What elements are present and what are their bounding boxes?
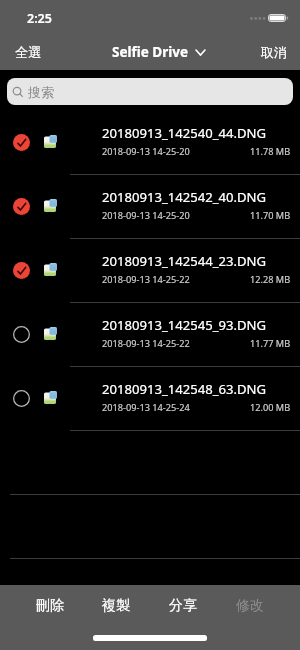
staticText: 11.77 MB (250, 337, 291, 350)
button[interactable]: 20180913_142544_23.DNG (0, 239, 300, 303)
button[interactable]: 全選 (0, 38, 53, 66)
button[interactable]: Selfie Drive (106, 38, 212, 66)
staticText: 2:25 (27, 10, 52, 27)
staticText: 全選 (15, 44, 41, 60)
button[interactable]: 搜索 (7, 78, 293, 105)
staticText: 2018-09-13 14-25-20 (102, 209, 190, 222)
staticText: 搜索 (28, 84, 54, 100)
staticText: 刪除 (36, 597, 64, 615)
staticText: 取消 (261, 44, 287, 60)
staticText: 20180913_142542_40.DNG (102, 188, 267, 206)
staticText: 12.28 MB (250, 273, 291, 286)
staticText: 2018-09-13 14-25-20 (102, 145, 190, 158)
staticText: 2018-09-13 14-25-24 (102, 401, 190, 414)
staticText: 20180913_142545_93.DNG (102, 316, 267, 334)
staticText: 20180913_142548_63.DNG (102, 380, 267, 398)
staticText: 2018-09-13 14-25-22 (102, 273, 190, 286)
staticText: 分享 (169, 597, 197, 615)
staticText: 複製 (102, 597, 130, 615)
button[interactable]: 刪除 (17, 588, 83, 623)
staticText: 12.00 MB (250, 401, 291, 414)
button[interactable]: 20180913_142548_63.DNG (0, 367, 300, 431)
button[interactable]: 分享 (149, 588, 216, 623)
button[interactable]: 取消 (249, 38, 300, 66)
staticText: 修改 (236, 597, 264, 615)
button[interactable]: 20180913_142545_93.DNG (0, 303, 300, 367)
staticText: Selfie Drive (112, 43, 189, 61)
staticText: 20180913_142540_44.DNG (102, 124, 267, 142)
staticText: 11.78 MB (250, 145, 291, 158)
staticText: 11.70 MB (250, 209, 291, 222)
button[interactable]: 複製 (83, 588, 149, 623)
button[interactable]: 修改 (216, 588, 283, 623)
button[interactable]: 20180913_142540_44.DNG (0, 111, 300, 175)
button[interactable]: 20180913_142542_40.DNG (0, 175, 300, 239)
staticText: 2018-09-13 14-25-22 (102, 337, 190, 350)
staticText: 20180913_142544_23.DNG (102, 252, 267, 270)
